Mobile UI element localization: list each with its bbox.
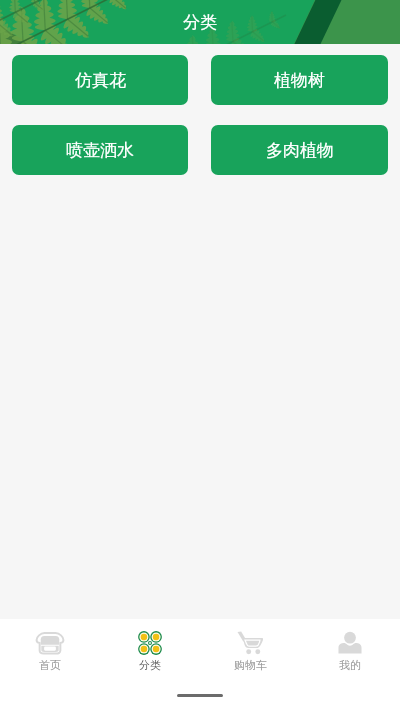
button[interactable]: 植物树 (211, 55, 388, 105)
staticText: 我的 (339, 658, 361, 672)
button[interactable]: 多肉植物 (211, 125, 388, 175)
button[interactable]: 我的 (300, 619, 400, 672)
staticText: 购物车 (234, 658, 267, 672)
button[interactable]: 仿真花 (12, 55, 188, 105)
staticText: 喷壶洒水 (66, 140, 134, 161)
staticText: 分类 (139, 658, 161, 672)
staticText: 首页 (39, 658, 61, 672)
button[interactable]: 购物车 (200, 619, 300, 672)
button[interactable]: 首页 (0, 619, 100, 672)
button[interactable]: 分类 (100, 619, 200, 672)
staticText: 仿真花 (75, 70, 126, 91)
staticText: 分类 (183, 12, 217, 33)
button[interactable]: 喷壶洒水 (12, 125, 188, 175)
staticText: 多肉植物 (266, 140, 334, 161)
staticText: 植物树 (274, 70, 325, 91)
